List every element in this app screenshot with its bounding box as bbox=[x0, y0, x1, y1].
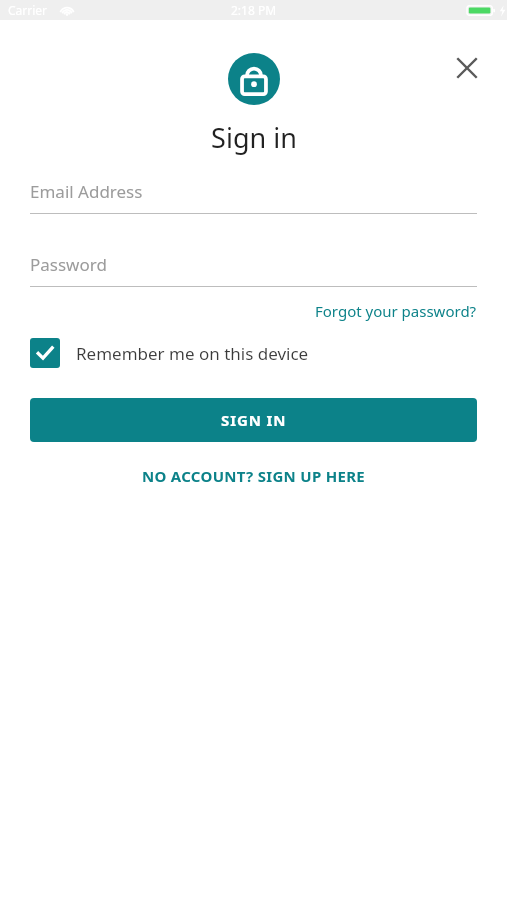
button[interactable]: Forgot your password? bbox=[315, 301, 477, 321]
staticText: 2:18 PM bbox=[231, 2, 277, 18]
button[interactable]: NO ACCOUNT? SIGN UP HERE bbox=[134, 462, 374, 490]
staticText: SIGN IN bbox=[221, 410, 287, 430]
staticText: Carrier bbox=[8, 2, 48, 18]
staticText: Sign in bbox=[211, 119, 297, 156]
staticText: Forgot your password? bbox=[315, 301, 477, 321]
button[interactable]: Close bbox=[447, 48, 487, 88]
staticText: Remember me on this device bbox=[76, 342, 309, 365]
button[interactable]: Email Address bbox=[30, 180, 477, 214]
button[interactable]: Remember me on this device bbox=[30, 338, 477, 368]
button[interactable]: Password bbox=[30, 253, 477, 287]
button[interactable]: SIGN IN bbox=[30, 398, 477, 442]
staticText: Password bbox=[30, 253, 107, 276]
staticText: NO ACCOUNT? SIGN UP HERE bbox=[142, 466, 366, 486]
staticText: Email Address bbox=[30, 180, 143, 203]
